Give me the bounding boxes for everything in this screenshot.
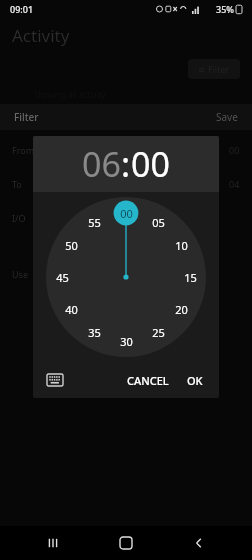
staticText: 25 xyxy=(152,325,165,340)
button[interactable]: Back xyxy=(179,526,219,560)
button[interactable]: 45 xyxy=(51,266,73,288)
staticText: OK xyxy=(187,373,203,388)
button[interactable]: OK xyxy=(181,369,209,392)
button[interactable]: 40 xyxy=(60,298,82,320)
button[interactable]: 20 xyxy=(170,298,192,320)
staticText: 06 xyxy=(82,141,121,187)
staticText: CANCEL xyxy=(127,373,169,388)
staticText: Save xyxy=(216,110,238,124)
staticText: 00 xyxy=(131,141,170,187)
button[interactable]: Save xyxy=(216,110,238,124)
staticText: 05 xyxy=(152,215,165,230)
staticText: 40 xyxy=(65,302,78,317)
staticText: To xyxy=(12,178,22,190)
button[interactable]: 35 xyxy=(83,321,105,343)
staticText: Filter xyxy=(14,110,39,124)
button[interactable]: Home xyxy=(106,526,146,560)
staticText: ≡ Filter xyxy=(198,63,230,75)
button[interactable]: 50 xyxy=(60,234,82,256)
staticText: 20 xyxy=(175,302,188,317)
staticText: 30 xyxy=(120,334,133,349)
staticText: 10 xyxy=(175,238,188,253)
staticText: 00 xyxy=(120,206,133,221)
staticText: Use xyxy=(12,268,28,280)
staticText: : xyxy=(121,141,131,187)
button[interactable]: 30 xyxy=(115,330,137,352)
button[interactable]: 00 xyxy=(131,141,170,187)
button[interactable]: 55 xyxy=(83,211,105,233)
staticText: 50 xyxy=(65,238,78,253)
staticText: 35 xyxy=(88,325,101,340)
staticText: 55 xyxy=(88,215,101,230)
button[interactable]: CANCEL xyxy=(121,369,175,392)
staticText: Activity xyxy=(12,24,70,47)
button[interactable]: 00 xyxy=(115,202,137,224)
staticText: 04 xyxy=(229,178,240,190)
button[interactable]: 10 xyxy=(170,234,192,256)
staticText: 35% xyxy=(216,3,234,15)
staticText: 09:01 xyxy=(10,3,34,15)
button[interactable]: Switch to text input xyxy=(43,368,67,392)
staticText: I/O xyxy=(12,212,26,224)
button[interactable]: 25 xyxy=(147,321,169,343)
button[interactable]: 06 xyxy=(82,141,121,187)
staticText: 45 xyxy=(56,270,69,285)
button[interactable]: Recent apps xyxy=(33,526,73,560)
staticText: From xyxy=(12,144,35,156)
staticText: 15 xyxy=(184,270,197,285)
button[interactable]: 05 xyxy=(147,211,169,233)
staticText: 00 xyxy=(229,144,240,156)
button[interactable]: 15 xyxy=(179,266,201,288)
